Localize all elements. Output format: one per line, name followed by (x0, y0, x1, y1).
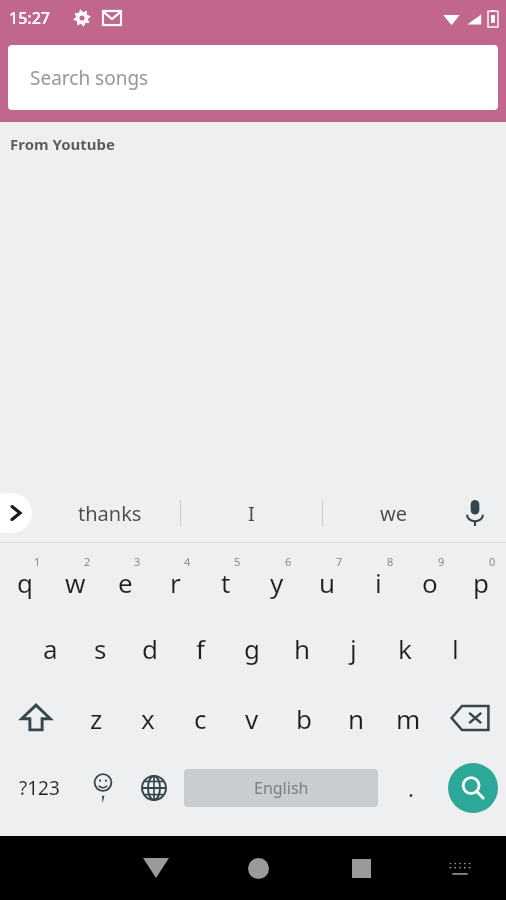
button[interactable]: r (150, 543, 200, 613)
staticText: 1 (34, 554, 41, 569)
staticText: thanks (78, 500, 142, 527)
button[interactable]: ?123 (0, 753, 78, 823)
button[interactable]: g (226, 613, 277, 683)
staticText: i (375, 565, 382, 600)
button[interactable]: f (175, 613, 226, 683)
staticText: f (196, 631, 205, 666)
button[interactable]: l (430, 613, 481, 683)
staticText: j (350, 631, 357, 666)
button[interactable]: we (323, 484, 464, 542)
staticText: g (244, 631, 260, 666)
staticText: a (43, 631, 58, 666)
staticText: 2 (84, 554, 91, 569)
staticText: z (90, 701, 103, 736)
staticText: k (398, 631, 412, 666)
button[interactable]: p (455, 543, 506, 613)
button[interactable]: h (277, 613, 328, 683)
button[interactable]: m (382, 683, 434, 753)
button[interactable]: thanks (40, 484, 180, 542)
staticText: m (396, 701, 421, 736)
staticText: 0 (489, 554, 496, 569)
button[interactable]: Search songs (8, 45, 498, 110)
staticText: x (141, 701, 155, 736)
staticText: Search songs (30, 65, 149, 91)
button[interactable]: Search (440, 753, 506, 823)
staticText: 3 (134, 554, 141, 569)
button[interactable]: s (75, 613, 125, 683)
staticText: 6 (285, 554, 292, 569)
staticText: h (294, 631, 311, 666)
button[interactable]: Shift (0, 683, 71, 753)
staticText: s (94, 631, 107, 666)
button[interactable]: o (404, 543, 455, 613)
button[interactable]: Home (207, 836, 310, 900)
staticText: d (142, 631, 158, 666)
button[interactable]: a (25, 613, 75, 683)
staticText: 7 (336, 554, 343, 569)
button[interactable]: u (302, 543, 353, 613)
staticText: 15:27 (9, 7, 50, 29)
staticText: ?123 (19, 775, 60, 801)
staticText: . (408, 773, 414, 803)
staticText: v (245, 701, 259, 736)
staticText: c (194, 701, 207, 736)
button[interactable]: e (100, 543, 150, 613)
button[interactable]: w (50, 543, 100, 613)
staticText: 8 (387, 554, 394, 569)
button[interactable]: c (174, 683, 226, 753)
button[interactable]: Hide keyboard (104, 836, 207, 900)
button[interactable]: Voice input (456, 494, 494, 532)
button[interactable]: I (181, 484, 322, 542)
button[interactable]: b (278, 683, 330, 753)
button[interactable]: More suggestions (0, 493, 32, 533)
staticText: English (254, 777, 309, 799)
button[interactable]: Emoji (78, 753, 128, 823)
button[interactable]: d (125, 613, 175, 683)
button[interactable]: . (382, 753, 440, 823)
staticText: w (65, 565, 86, 600)
button[interactable]: x (122, 683, 174, 753)
staticText: I (248, 500, 255, 527)
staticText: l (452, 631, 459, 666)
staticText: 4 (184, 554, 191, 569)
staticText: p (473, 565, 489, 600)
button[interactable]: j (328, 613, 379, 683)
button[interactable]: q (0, 543, 50, 613)
staticText: n (348, 701, 365, 736)
staticText: r (170, 565, 181, 600)
button[interactable]: t (200, 543, 251, 613)
button[interactable]: y (251, 543, 302, 613)
staticText: b (296, 701, 312, 736)
button[interactable]: Backspace (434, 683, 506, 753)
staticText: e (118, 565, 133, 600)
button[interactable]: k (379, 613, 430, 683)
button[interactable]: n (330, 683, 382, 753)
button[interactable]: z (71, 683, 122, 753)
staticText: t (221, 565, 231, 600)
staticText: From Youtube (10, 134, 116, 154)
staticText: 5 (234, 554, 241, 569)
staticText: o (422, 565, 438, 600)
button[interactable]: Recents (310, 836, 413, 900)
button[interactable]: Change language (128, 753, 180, 823)
staticText: 9 (438, 554, 445, 569)
staticText: u (319, 565, 336, 600)
staticText: we (380, 500, 407, 527)
staticText: y (270, 565, 284, 600)
staticText: q (17, 565, 33, 600)
button[interactable]: i (353, 543, 404, 613)
button[interactable]: English (184, 769, 378, 807)
button[interactable]: v (226, 683, 278, 753)
button[interactable]: Switch keyboard (413, 836, 506, 900)
